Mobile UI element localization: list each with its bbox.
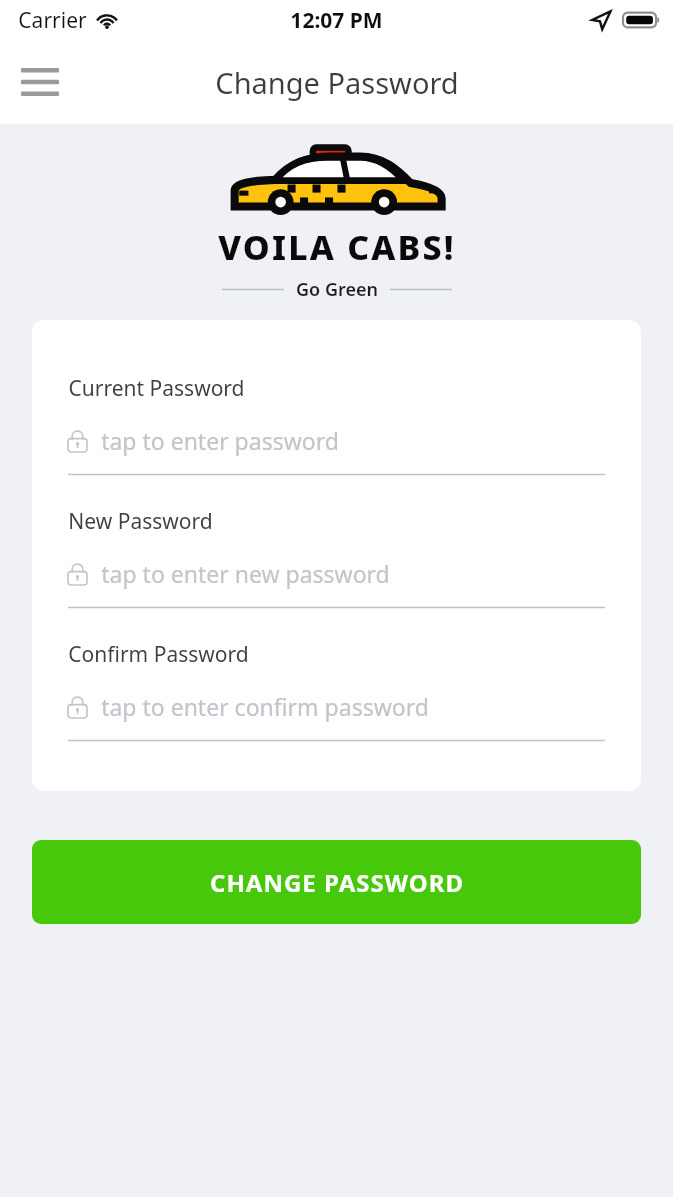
button[interactable]: New Password (68, 507, 605, 608)
button[interactable]: Confirm Password (68, 640, 605, 741)
button[interactable]: Current Password (68, 374, 605, 475)
staticText: tap to enter password (101, 425, 339, 456)
staticText: tap to enter new password (101, 558, 390, 589)
staticText: New Password (68, 507, 213, 536)
staticText: tap to enter confirm password (101, 691, 429, 722)
staticText: Carrier (18, 6, 87, 35)
staticText: Current Password (68, 374, 245, 403)
other: Voila Cabs taxi logo (222, 144, 452, 222)
staticText: CHANGE PASSWORD (210, 866, 464, 899)
staticText: Go Green (296, 277, 378, 302)
button[interactable]: CHANGE PASSWORD (32, 840, 641, 924)
staticText: 12:07 PM (290, 6, 383, 35)
staticText: Confirm Password (68, 640, 249, 669)
staticText: Change Password (215, 63, 459, 102)
staticText: VOILA CABS! (218, 224, 456, 270)
button[interactable]: Open navigation menu (6, 48, 74, 116)
